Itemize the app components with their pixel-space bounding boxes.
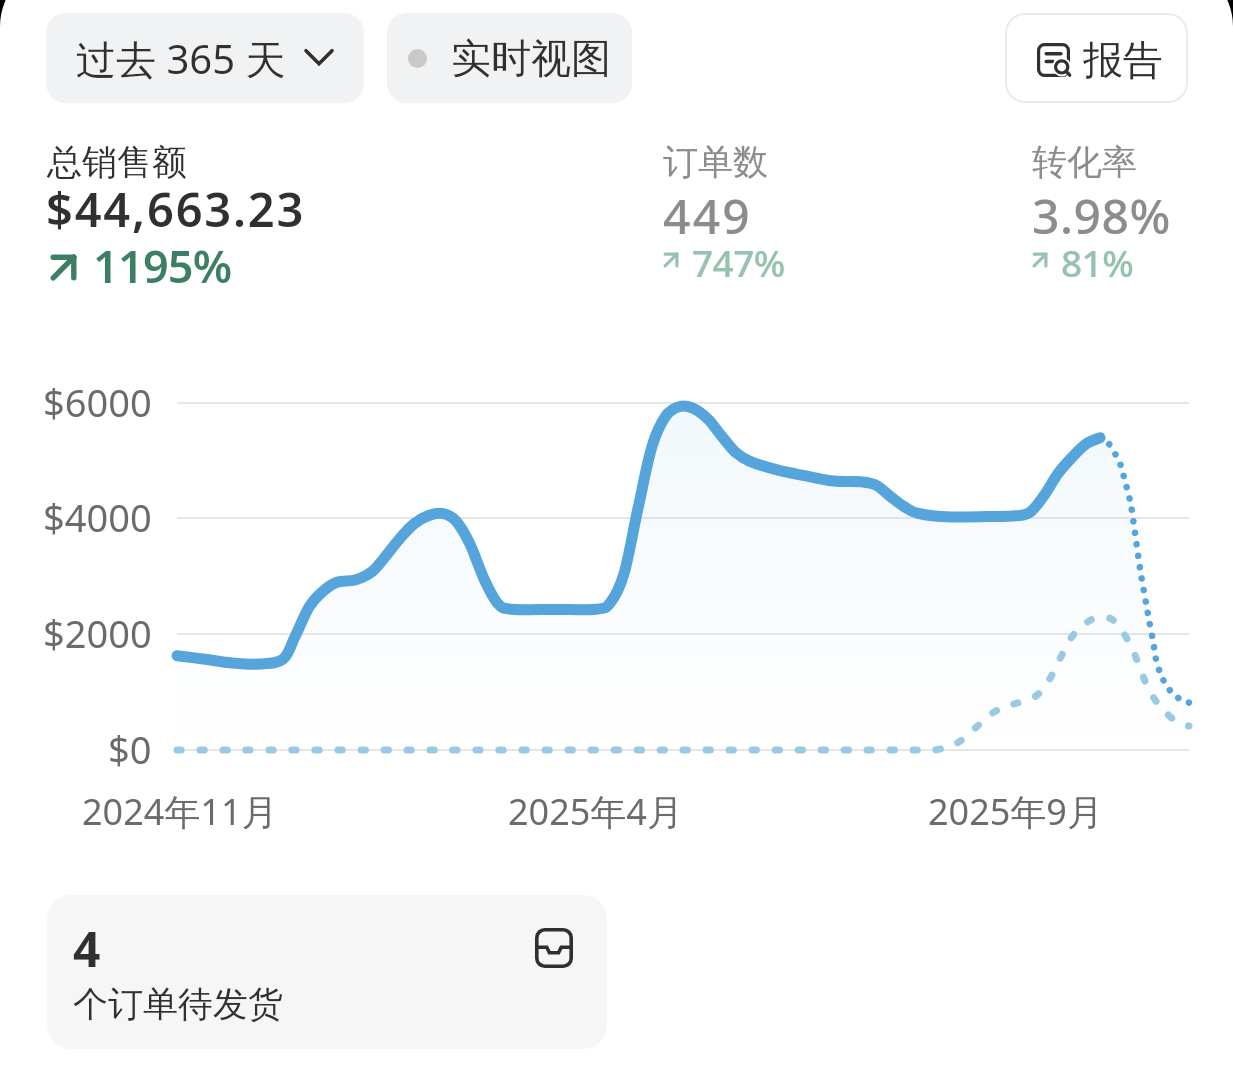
other: Reports bbox=[1037, 43, 1071, 77]
staticText: 总销售额 bbox=[47, 140, 187, 184]
staticText: $0 bbox=[108, 723, 152, 775]
staticText: 449 bbox=[663, 183, 752, 248]
staticText: $4000 bbox=[43, 491, 152, 543]
button[interactable]: 4 bbox=[47, 895, 607, 1049]
staticText: 2025年4月 bbox=[508, 787, 683, 836]
button[interactable]: 过去 365 天 bbox=[46, 13, 364, 103]
staticText: $44,663.23 bbox=[46, 177, 306, 241]
staticText: 81% bbox=[1061, 237, 1134, 287]
staticText: 转化率 bbox=[1032, 140, 1137, 184]
staticText: $6000 bbox=[43, 376, 152, 428]
staticText: 实时视图 bbox=[451, 33, 611, 83]
staticText: 订单数 bbox=[663, 140, 768, 184]
staticText: 4 bbox=[73, 916, 101, 981]
staticText: 3.98% bbox=[1032, 183, 1171, 248]
staticText: 2025年9月 bbox=[928, 787, 1103, 836]
staticText: 1195% bbox=[93, 235, 232, 296]
staticText: 过去 365 天 bbox=[76, 31, 286, 86]
button[interactable]: 实时视图 bbox=[387, 13, 632, 103]
staticText: $2000 bbox=[43, 607, 152, 659]
staticText: 个订单待发货 bbox=[73, 982, 283, 1026]
other: Orders to fulfill bbox=[535, 928, 573, 968]
staticText: 报告 bbox=[1083, 35, 1163, 85]
staticText: 747% bbox=[692, 237, 785, 287]
staticText: 2024年11月 bbox=[82, 787, 278, 836]
button[interactable]: Reports bbox=[1005, 13, 1188, 103]
